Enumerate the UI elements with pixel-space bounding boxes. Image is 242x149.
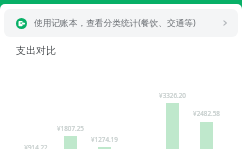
button[interactable]: 使用记账本，查看分类统计(餐饮、交通等) — [4, 9, 238, 37]
other: 查看详情 — [221, 19, 229, 27]
staticText: ¥2482.58 — [193, 109, 220, 118]
staticText: ¥1274.19 — [91, 135, 118, 144]
staticText: ¥3326.20 — [159, 91, 186, 100]
staticText: ¥1807.25 — [57, 124, 84, 133]
staticText: ¥914.22 — [24, 143, 48, 149]
staticText: 支出对比 — [16, 44, 56, 57]
staticText: 使用记账本，查看分类统计(餐饮、交通等) — [34, 17, 196, 29]
